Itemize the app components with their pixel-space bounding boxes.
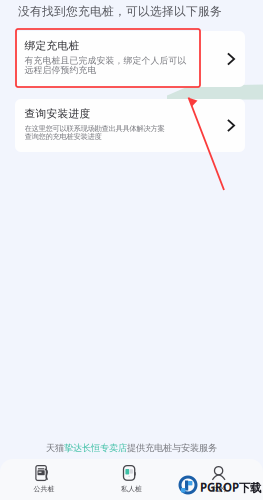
staticText: 提供充电桩与安装服务 xyxy=(127,442,217,454)
button[interactable]: 我的 xyxy=(175,459,263,500)
staticText: 公共桩 xyxy=(33,485,54,493)
staticText: 有充电桩且已完成安装，绑定个人后可以 xyxy=(24,55,186,66)
staticText: 查询安装进度 xyxy=(24,107,90,120)
button[interactable]: 查询安装进度 xyxy=(15,99,245,152)
staticText: 私人桩 xyxy=(121,485,142,493)
staticText: 在这里您可以联系现场勘查出具具体解决方案 xyxy=(24,124,164,133)
staticText: 绑定充电桩 xyxy=(24,39,79,52)
staticText: 我的 xyxy=(212,485,226,493)
staticText: PGROP下载 xyxy=(200,479,261,495)
staticText: 没有找到您充电桩，可以选择以下服务 xyxy=(18,4,222,19)
button[interactable]: 公共桩 xyxy=(0,459,88,500)
staticText: 挚达长恒专卖店 xyxy=(64,442,127,454)
staticText: 远程启停预约充电 xyxy=(24,64,96,76)
button[interactable]: 绑定充电桩 xyxy=(15,31,245,87)
staticText: 查询您的充电桩安装进度 xyxy=(24,132,101,141)
button[interactable]: 私人桩 xyxy=(88,459,175,500)
staticText: 天猫 xyxy=(46,442,64,454)
